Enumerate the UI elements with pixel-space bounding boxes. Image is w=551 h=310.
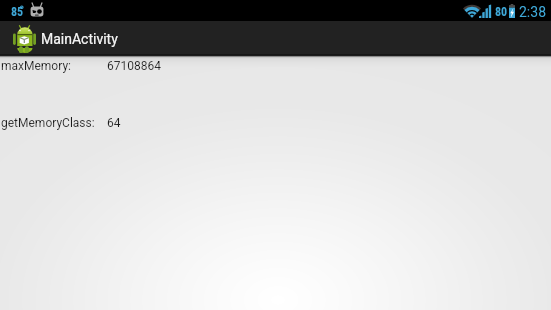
other: Battery charging: [509, 4, 515, 18]
button[interactable]: MainActivity: [0, 21, 551, 54]
staticText: 80: [495, 5, 508, 19]
staticText: MainActivity: [41, 31, 118, 47]
staticText: maxMemory:: [1, 59, 107, 73]
staticText: 85: [11, 5, 24, 19]
staticText: 64: [107, 116, 121, 130]
other: Mobile signal: [479, 4, 492, 18]
staticText: getMemoryClass:: [1, 116, 107, 130]
other: Wi-Fi signal: [463, 5, 481, 18]
staticText: 2:38: [519, 4, 546, 20]
staticText: 67108864: [107, 59, 161, 73]
